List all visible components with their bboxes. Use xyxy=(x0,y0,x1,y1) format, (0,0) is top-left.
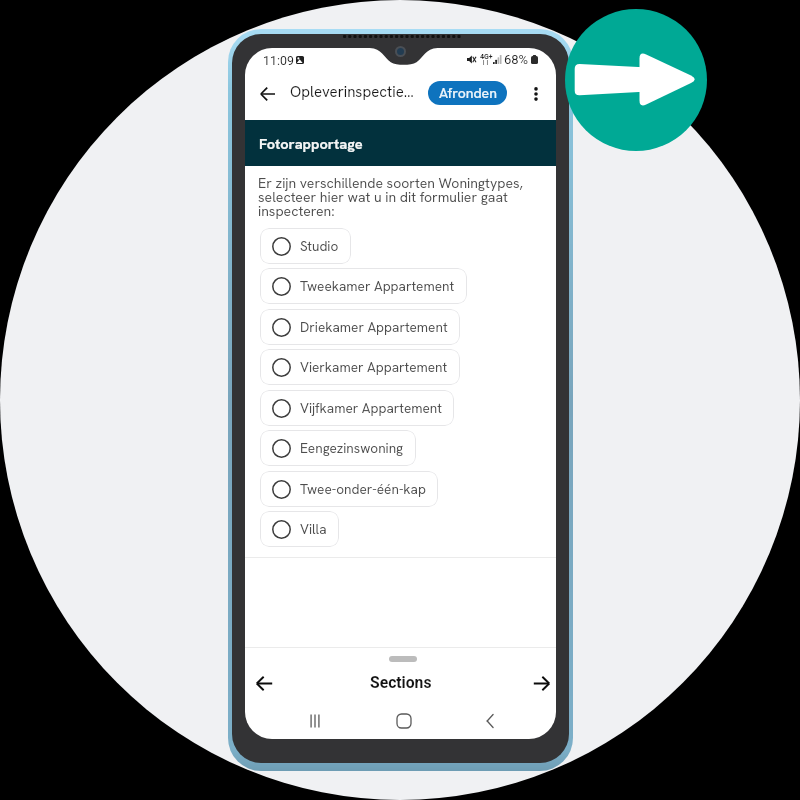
staticText: Villa xyxy=(300,520,327,538)
button[interactable]: Driekamer Appartement xyxy=(260,309,460,345)
staticText: Er zijn verschillende soorten Woningtype… xyxy=(258,174,524,220)
button[interactable]: Recents xyxy=(299,704,331,738)
button[interactable]: Vierkamer Appartement xyxy=(260,349,460,385)
staticText: Twee-onder-één-kap xyxy=(300,480,426,498)
staticText: 11:09 xyxy=(263,53,294,68)
staticText: Opleverinspectie… xyxy=(290,82,414,101)
staticText: Studio xyxy=(300,237,339,255)
button[interactable]: Tweekamer Appartement xyxy=(260,268,467,304)
button[interactable]: Back xyxy=(474,704,506,738)
button[interactable]: More options xyxy=(518,76,553,111)
staticText: 68% xyxy=(504,52,529,67)
staticText: Vierkamer Appartement xyxy=(300,358,448,376)
button[interactable]: Previous section xyxy=(246,665,282,701)
staticText: Sections xyxy=(370,673,432,691)
staticText: Afronden xyxy=(439,84,497,102)
button[interactable]: Home xyxy=(388,704,420,738)
button[interactable]: Afronden xyxy=(428,81,507,105)
button[interactable]: Villa xyxy=(260,511,339,547)
button[interactable]: Next step xyxy=(565,9,707,151)
staticText: Vijfkamer Appartement xyxy=(300,399,442,417)
button[interactable]: Twee-onder-één-kap xyxy=(260,471,438,507)
staticText: 4G+ xyxy=(480,53,493,61)
button[interactable]: Back xyxy=(250,76,285,111)
staticText: Fotorapportage xyxy=(259,134,363,153)
staticText: Driekamer Appartement xyxy=(300,318,448,336)
staticText: Tweekamer Appartement xyxy=(300,277,455,295)
staticText: Eengezinswoning xyxy=(300,439,404,457)
button[interactable]: Studio xyxy=(260,228,351,264)
button[interactable]: Next section xyxy=(523,665,556,701)
button[interactable]: Vijfkamer Appartement xyxy=(260,390,454,426)
button[interactable]: Eengezinswoning xyxy=(260,430,416,466)
